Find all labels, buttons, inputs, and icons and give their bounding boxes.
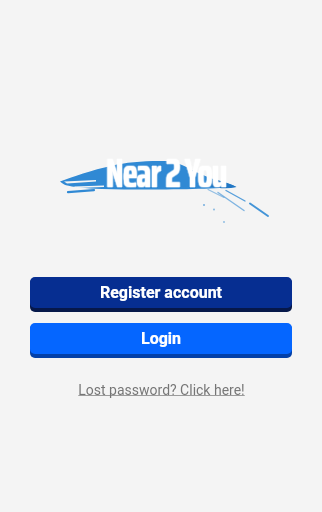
button[interactable]: Lost password? Click here!: [78, 382, 245, 398]
button[interactable]: Register account: [30, 277, 292, 308]
staticText: Near 2 You: [105, 142, 226, 205]
staticText: Near 2 You: [106, 142, 227, 205]
staticText: Near 2 You: [106, 141, 227, 204]
staticText: Near 2 You: [106, 143, 227, 206]
button[interactable]: Login: [30, 323, 292, 354]
staticText: Login: [141, 329, 182, 348]
staticText: Near 2 You: [107, 142, 228, 205]
staticText: Lost password? Click here!: [78, 382, 245, 398]
staticText: Register account: [100, 283, 223, 302]
